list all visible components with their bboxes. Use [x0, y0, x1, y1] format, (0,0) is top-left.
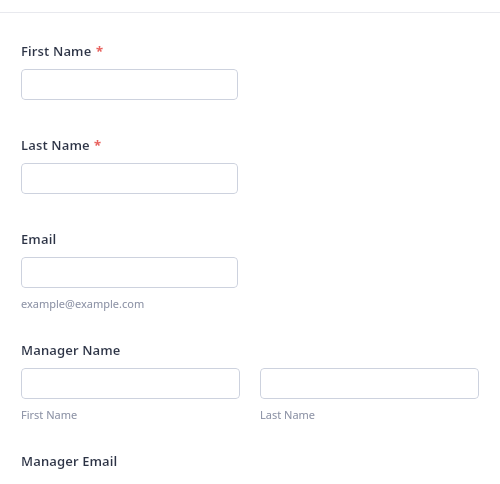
staticText: *	[96, 42, 104, 60]
staticText: First Name	[21, 42, 92, 60]
staticText: *	[94, 136, 102, 154]
button[interactable]: Email input	[21, 257, 238, 288]
staticText: Email	[21, 230, 57, 248]
staticText: First Name	[21, 407, 78, 422]
button[interactable]: Last Name input	[21, 163, 238, 194]
staticText: Last Name	[21, 136, 90, 154]
button[interactable]: Manager first name input	[21, 368, 240, 399]
staticText: Last Name	[260, 407, 316, 422]
button[interactable]: Manager last name input	[260, 368, 479, 399]
staticText: Manager Email	[21, 452, 118, 470]
staticText: example@example.com	[21, 296, 145, 311]
staticText: Manager Name	[21, 341, 121, 359]
button[interactable]: First Name input	[21, 69, 238, 100]
